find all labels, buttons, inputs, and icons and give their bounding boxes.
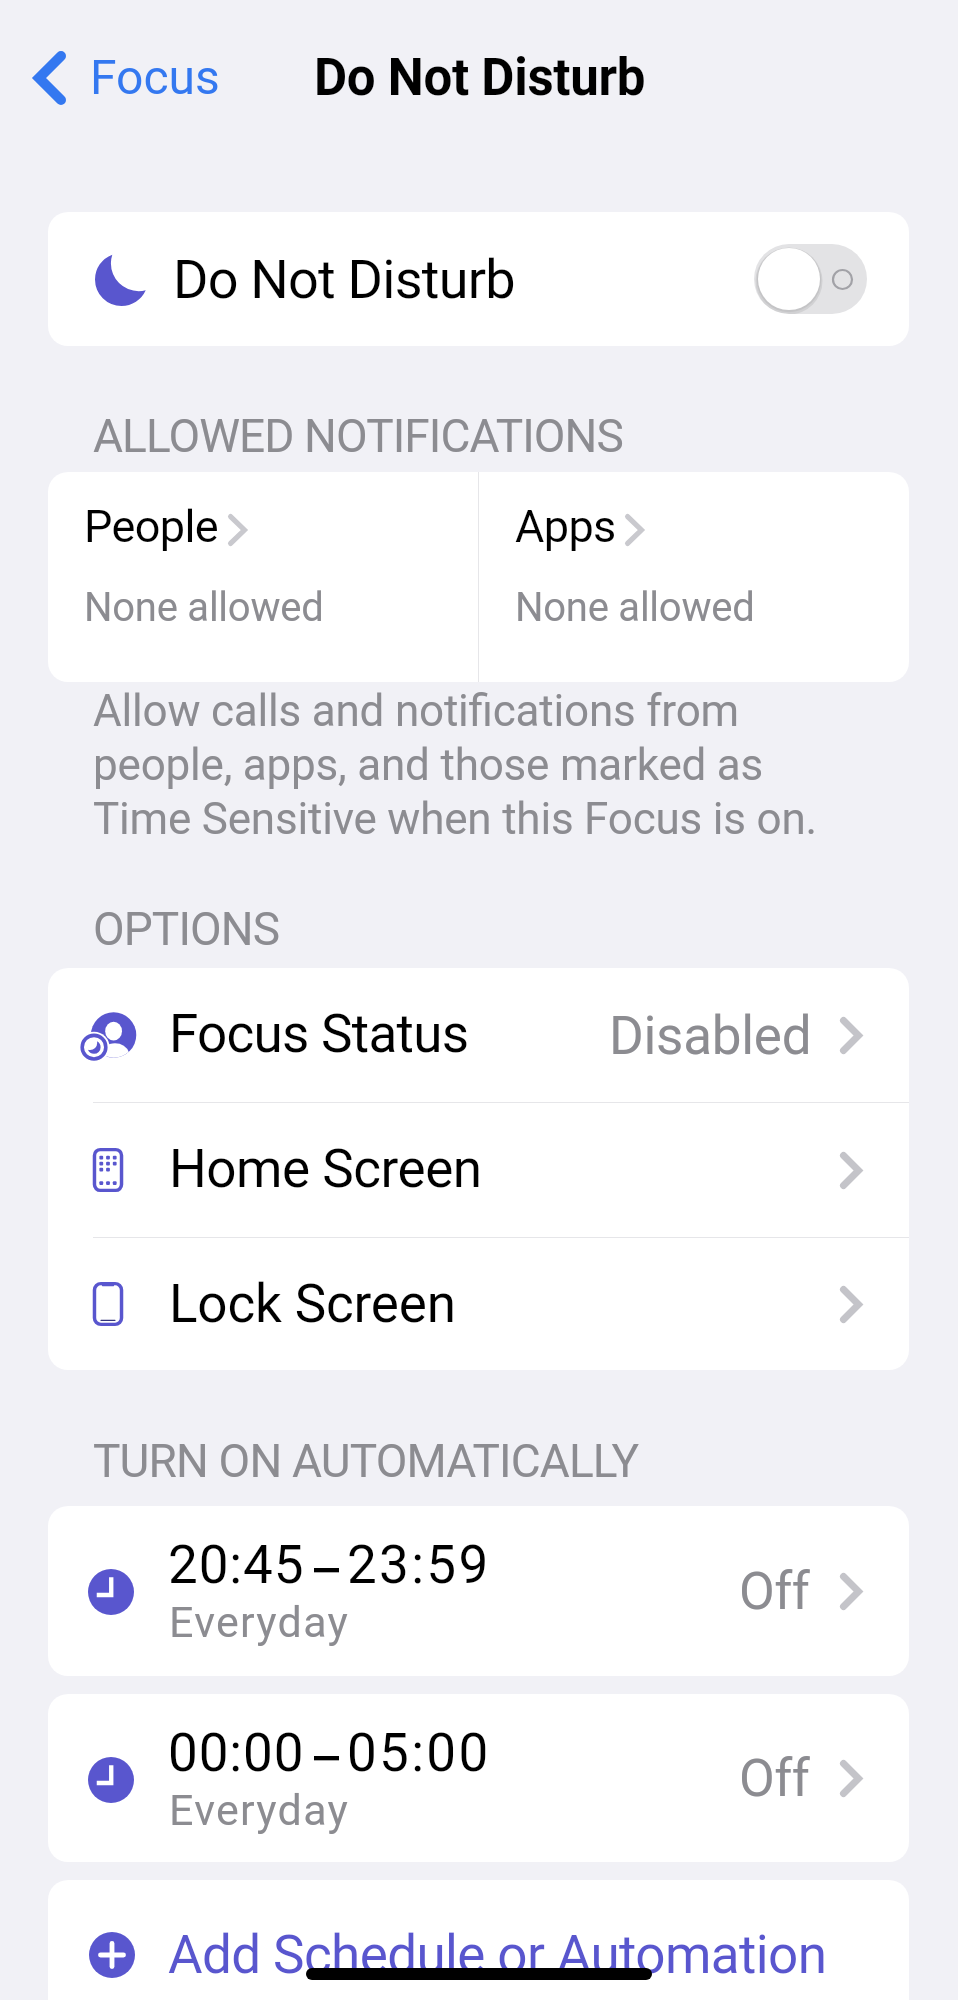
staticText: ALLOWED NOTIFICATIONS: [93, 409, 623, 463]
button[interactable]: 00:00: [48, 1694, 909, 1862]
staticText: OPTIONS: [93, 902, 280, 956]
button[interactable]: People: [48, 472, 478, 682]
staticText: 20:45: [168, 1534, 305, 1596]
button[interactable]: Do Not Disturb toggle, off: [754, 244, 867, 314]
staticText: Focus Status: [169, 1003, 469, 1065]
staticText: Disabled: [609, 1005, 812, 1067]
button[interactable]: Add Schedule or Automation: [48, 1880, 909, 2000]
button[interactable]: Apps: [479, 472, 909, 682]
staticText: 00:00: [168, 1722, 305, 1784]
staticText: Everyday: [169, 1785, 350, 1835]
staticText: people, apps, and those marked as: [93, 739, 764, 791]
staticText: Off: [739, 1561, 810, 1622]
staticText: Everyday: [169, 1597, 350, 1647]
staticText: Add Schedule or Automation: [168, 1924, 827, 1986]
staticText: Focus: [90, 49, 220, 105]
button[interactable]: Home Screen: [48, 1103, 909, 1237]
staticText: 23:59: [347, 1534, 491, 1596]
staticText: Lock Screen: [169, 1273, 456, 1335]
staticText: People: [84, 500, 219, 553]
staticText: Time Sensitive when this Focus is on.: [93, 793, 817, 845]
button[interactable]: 20:45: [48, 1506, 909, 1676]
staticText: Off: [739, 1748, 810, 1809]
staticText: Allow calls and notifications from: [93, 685, 739, 737]
staticText: Do Not Disturb: [173, 248, 515, 311]
button[interactable]: Focus Status: [48, 968, 909, 1102]
staticText: None allowed: [84, 584, 324, 631]
staticText: TURN ON AUTOMATICALLY: [93, 1434, 639, 1488]
button[interactable]: Do Not Disturb: [48, 212, 909, 346]
button[interactable]: Back to Focus: [14, 38, 234, 118]
staticText: Home Screen: [169, 1138, 482, 1200]
staticText: Do Not Disturb: [314, 48, 646, 108]
staticText: None allowed: [515, 584, 755, 631]
staticText: 05:00: [347, 1722, 491, 1784]
staticText: Apps: [515, 500, 616, 553]
button[interactable]: Lock Screen: [48, 1238, 909, 1370]
